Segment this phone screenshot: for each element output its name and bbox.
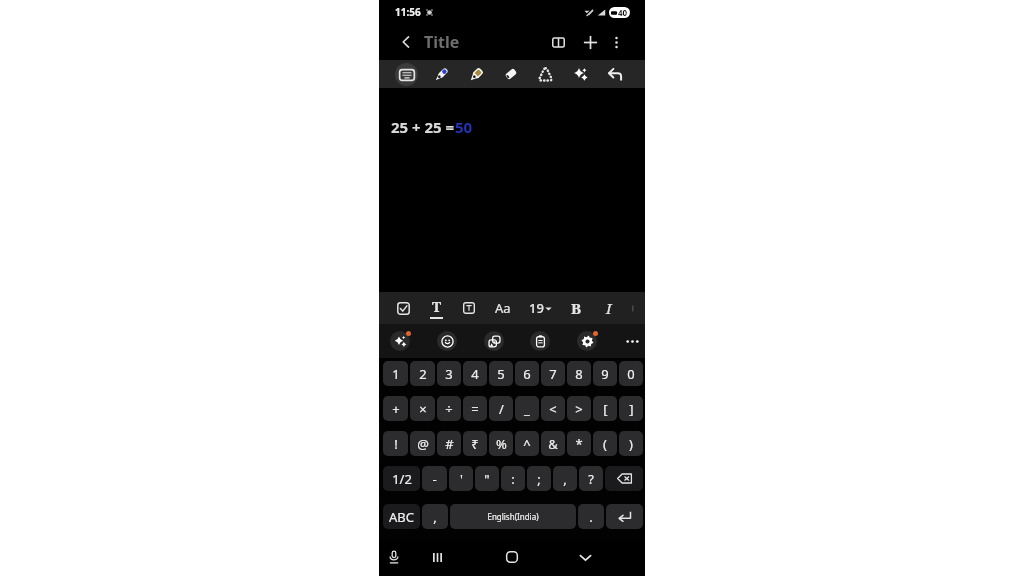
- staticText: 1/2: [392, 470, 412, 488]
- staticText: ?: [588, 470, 594, 488]
- button[interactable]: *: [567, 431, 591, 456]
- staticText: 2: [419, 365, 427, 383]
- staticText: ,: [563, 470, 567, 488]
- button[interactable]: 1: [383, 361, 408, 386]
- staticText: -: [432, 470, 437, 488]
- button[interactable]: -: [422, 466, 447, 491]
- button[interactable]: 0: [619, 361, 643, 386]
- button[interactable]: ₹: [463, 431, 487, 456]
- button[interactable]: Enter: [606, 504, 643, 529]
- button[interactable]: .: [578, 504, 604, 529]
- staticText: :: [511, 470, 515, 488]
- button[interactable]: ,: [553, 466, 577, 491]
- staticText: ": [484, 470, 490, 488]
- staticText: 6: [523, 365, 531, 383]
- button[interactable]: #: [437, 431, 461, 456]
- button[interactable]: 4: [463, 361, 487, 386]
- staticText: Aa: [495, 299, 511, 317]
- button[interactable]: ": [475, 466, 499, 491]
- button[interactable]: Voice input: [381, 544, 407, 570]
- button[interactable]: English(India): [450, 504, 576, 529]
- staticText: /: [499, 400, 504, 418]
- staticText: 40: [618, 7, 628, 18]
- button[interactable]: Undo: [603, 62, 627, 86]
- staticText: ₹: [471, 435, 479, 453]
- button[interactable]: Emoji: [434, 328, 460, 354]
- staticText: 0: [627, 365, 635, 383]
- button[interactable]: <: [541, 396, 565, 421]
- button[interactable]: &: [541, 431, 565, 456]
- button[interactable]: 2: [410, 361, 435, 386]
- staticText: *: [575, 435, 583, 453]
- button[interactable]: AI assist: [568, 62, 592, 86]
- button[interactable]: Clipboard: [527, 328, 553, 354]
- staticText: ;: [537, 470, 541, 488]
- button[interactable]: More: [621, 330, 643, 352]
- staticText: Title: [424, 31, 460, 53]
- button[interactable]: Text box: [457, 296, 481, 320]
- button[interactable]: ^: [515, 431, 539, 456]
- button[interactable]: ': [449, 466, 473, 491]
- button[interactable]: !: [383, 431, 408, 456]
- staticText: .: [589, 508, 593, 526]
- button[interactable]: Split view: [545, 29, 571, 55]
- button[interactable]: Italic: [597, 296, 621, 320]
- button[interactable]: _: [515, 396, 539, 421]
- button[interactable]: Backspace: [605, 466, 643, 491]
- button[interactable]: 5: [489, 361, 513, 386]
- button[interactable]: Bold: [564, 296, 588, 320]
- staticText: ]: [629, 400, 634, 418]
- staticText: 4: [471, 365, 479, 383]
- button[interactable]: 8: [567, 361, 591, 386]
- staticText: _: [524, 400, 530, 418]
- button[interactable]: Pen: [429, 62, 453, 86]
- button[interactable]: AI writing assist: [387, 328, 413, 354]
- button[interactable]: Add: [577, 29, 603, 55]
- button[interactable]: 6: [515, 361, 539, 386]
- button[interactable]: :: [501, 466, 525, 491]
- button[interactable]: Lasso select: [533, 62, 557, 86]
- button[interactable]: 1/2: [383, 466, 420, 491]
- button[interactable]: Hide keyboard: [572, 544, 598, 570]
- button[interactable]: Font size: [490, 295, 516, 321]
- button[interactable]: 3: [437, 361, 461, 386]
- staticText: ): [629, 435, 633, 453]
- staticText: #: [445, 435, 454, 453]
- button[interactable]: ?: [579, 466, 603, 491]
- button[interactable]: Recents: [424, 544, 450, 570]
- button[interactable]: 9: [593, 361, 617, 386]
- staticText: ^: [523, 435, 531, 453]
- button[interactable]: +: [383, 396, 408, 421]
- button[interactable]: ×: [410, 396, 435, 421]
- staticText: B: [571, 298, 582, 318]
- button[interactable]: Text format: [424, 296, 448, 320]
- button[interactable]: =: [463, 396, 487, 421]
- button[interactable]: Settings: [574, 328, 600, 354]
- button[interactable]: Back: [397, 24, 415, 60]
- button[interactable]: ]: [619, 396, 643, 421]
- button[interactable]: Highlighter: [464, 62, 488, 86]
- button[interactable]: @: [410, 431, 435, 456]
- staticText: 3: [445, 365, 453, 383]
- button[interactable]: [: [593, 396, 617, 421]
- button[interactable]: Home: [499, 544, 525, 570]
- button[interactable]: ABC: [383, 504, 420, 529]
- button[interactable]: ): [619, 431, 643, 456]
- button[interactable]: /: [489, 396, 513, 421]
- staticText: 7: [549, 365, 557, 383]
- button[interactable]: ,: [422, 504, 448, 529]
- button[interactable]: %: [489, 431, 513, 456]
- button[interactable]: (: [593, 431, 617, 456]
- button[interactable]: 19: [526, 299, 555, 317]
- staticText: =: [471, 400, 479, 418]
- button[interactable]: 7: [541, 361, 565, 386]
- button[interactable]: More options: [603, 29, 629, 55]
- button[interactable]: Eraser: [499, 62, 523, 86]
- button[interactable]: Text mode: [395, 63, 418, 86]
- button[interactable]: Stickers: [481, 328, 507, 354]
- button[interactable]: Title: [424, 31, 460, 53]
- button[interactable]: ;: [527, 466, 551, 491]
- button[interactable]: Checklist: [391, 296, 415, 320]
- button[interactable]: >: [567, 396, 591, 421]
- button[interactable]: ÷: [437, 396, 461, 421]
